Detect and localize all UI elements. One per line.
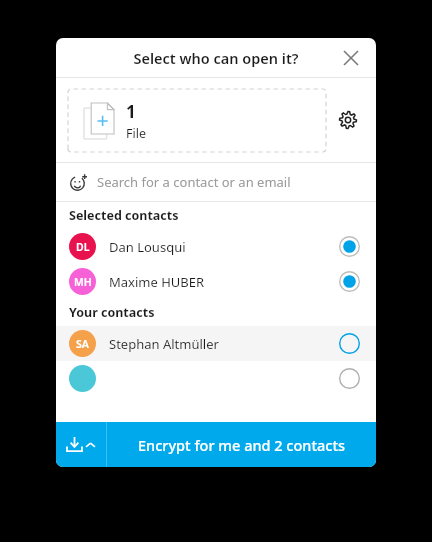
button[interactable]: SA — [56, 326, 376, 361]
staticText: SA — [76, 337, 89, 351]
button[interactable]: DL — [56, 229, 376, 264]
staticText: Dan Lousqui — [109, 238, 186, 256]
button[interactable]: Settings — [332, 104, 364, 136]
staticText: File — [126, 125, 146, 142]
button[interactable] — [56, 361, 376, 396]
staticText: Search for a contact or an email — [97, 173, 291, 191]
button[interactable]: MH — [56, 264, 376, 299]
button[interactable]: 1 — [68, 89, 326, 152]
button[interactable]: Search for a contact or an email — [56, 163, 376, 201]
button[interactable]: Close — [336, 43, 366, 73]
staticText: Maxime HUBER — [109, 273, 205, 291]
button[interactable]: Download options — [56, 422, 106, 467]
staticText: 1 — [126, 100, 136, 123]
staticText: Selected contacts — [69, 207, 179, 224]
staticText: Encrypt for me and 2 contacts — [138, 435, 346, 455]
staticText: Select who can open it? — [56, 48, 376, 68]
button[interactable]: Encrypt for me and 2 contacts — [107, 422, 376, 467]
staticText: MH — [74, 275, 92, 289]
staticText: Stephan Altmüller — [109, 335, 219, 353]
staticText: Your contacts — [69, 304, 155, 321]
staticText: DL — [76, 240, 90, 254]
